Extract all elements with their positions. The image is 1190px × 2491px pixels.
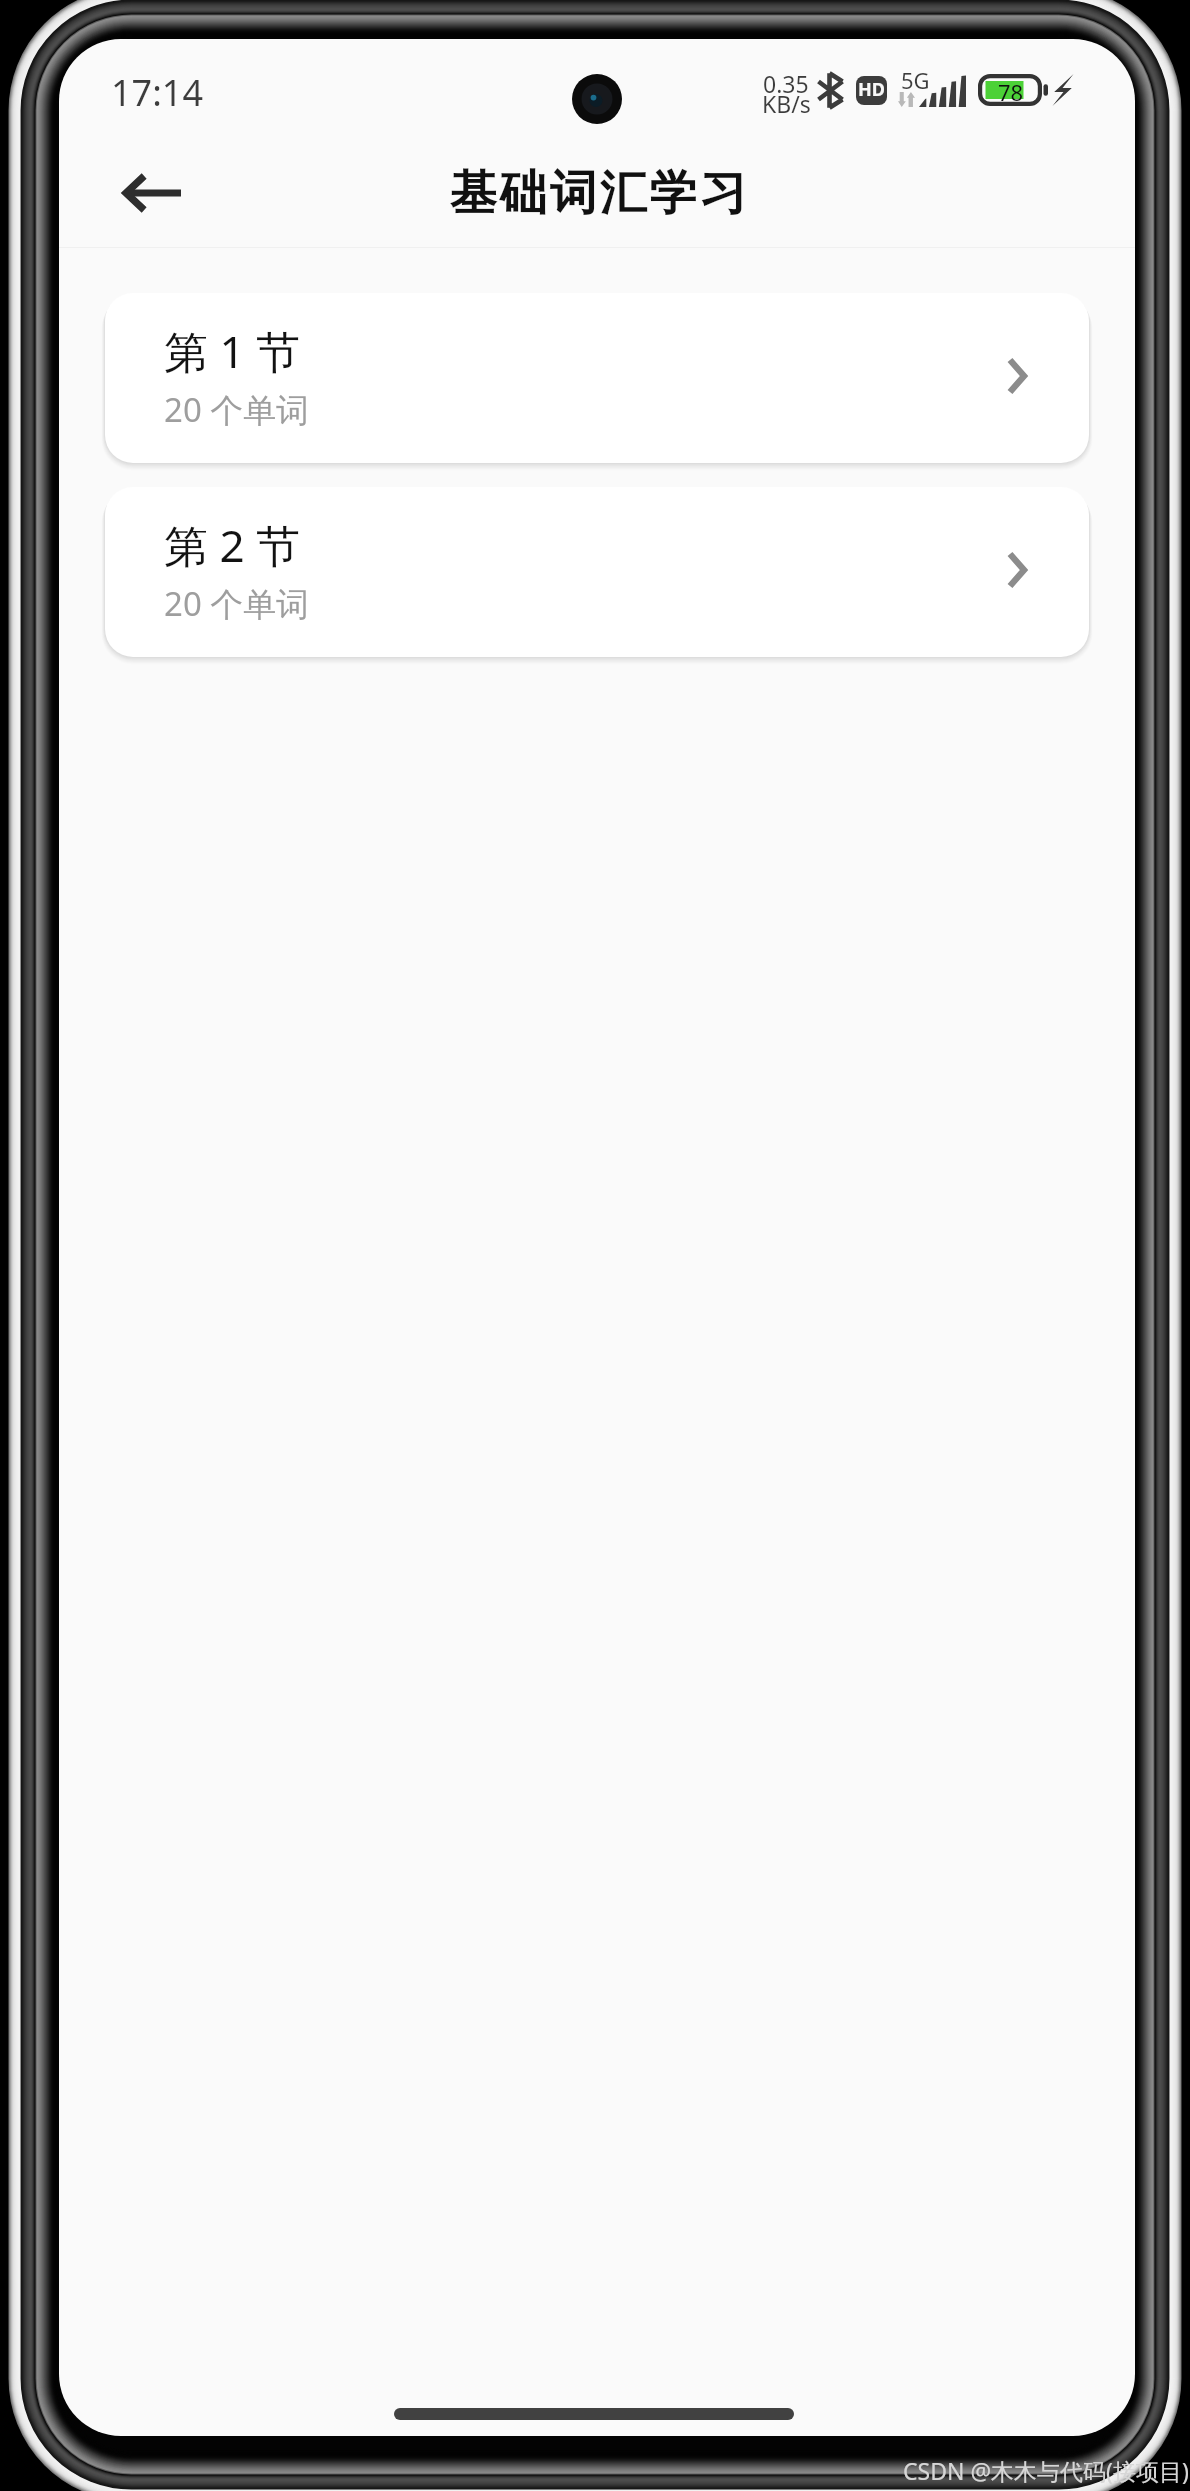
staticText: KB/s	[762, 88, 811, 119]
staticText: CSDN @木木与代码(接项目)	[903, 2455, 1189, 2486]
staticText: 20 个单词	[164, 387, 310, 432]
button[interactable]: 第 2 节	[105, 487, 1089, 657]
staticText: 17:14	[111, 68, 204, 117]
staticText: 5G	[901, 65, 930, 95]
staticText: 第 2 节	[164, 515, 301, 575]
staticText: 0.35	[763, 68, 809, 99]
staticText: 78	[998, 77, 1024, 107]
button[interactable]: Back	[104, 147, 202, 245]
staticText: HD	[858, 77, 885, 102]
button[interactable]: 第 1 节	[105, 293, 1089, 463]
staticText: 20 个单词	[164, 581, 310, 626]
staticText: 第 1 节	[164, 321, 301, 381]
staticText: 基础词汇学习	[450, 164, 750, 223]
